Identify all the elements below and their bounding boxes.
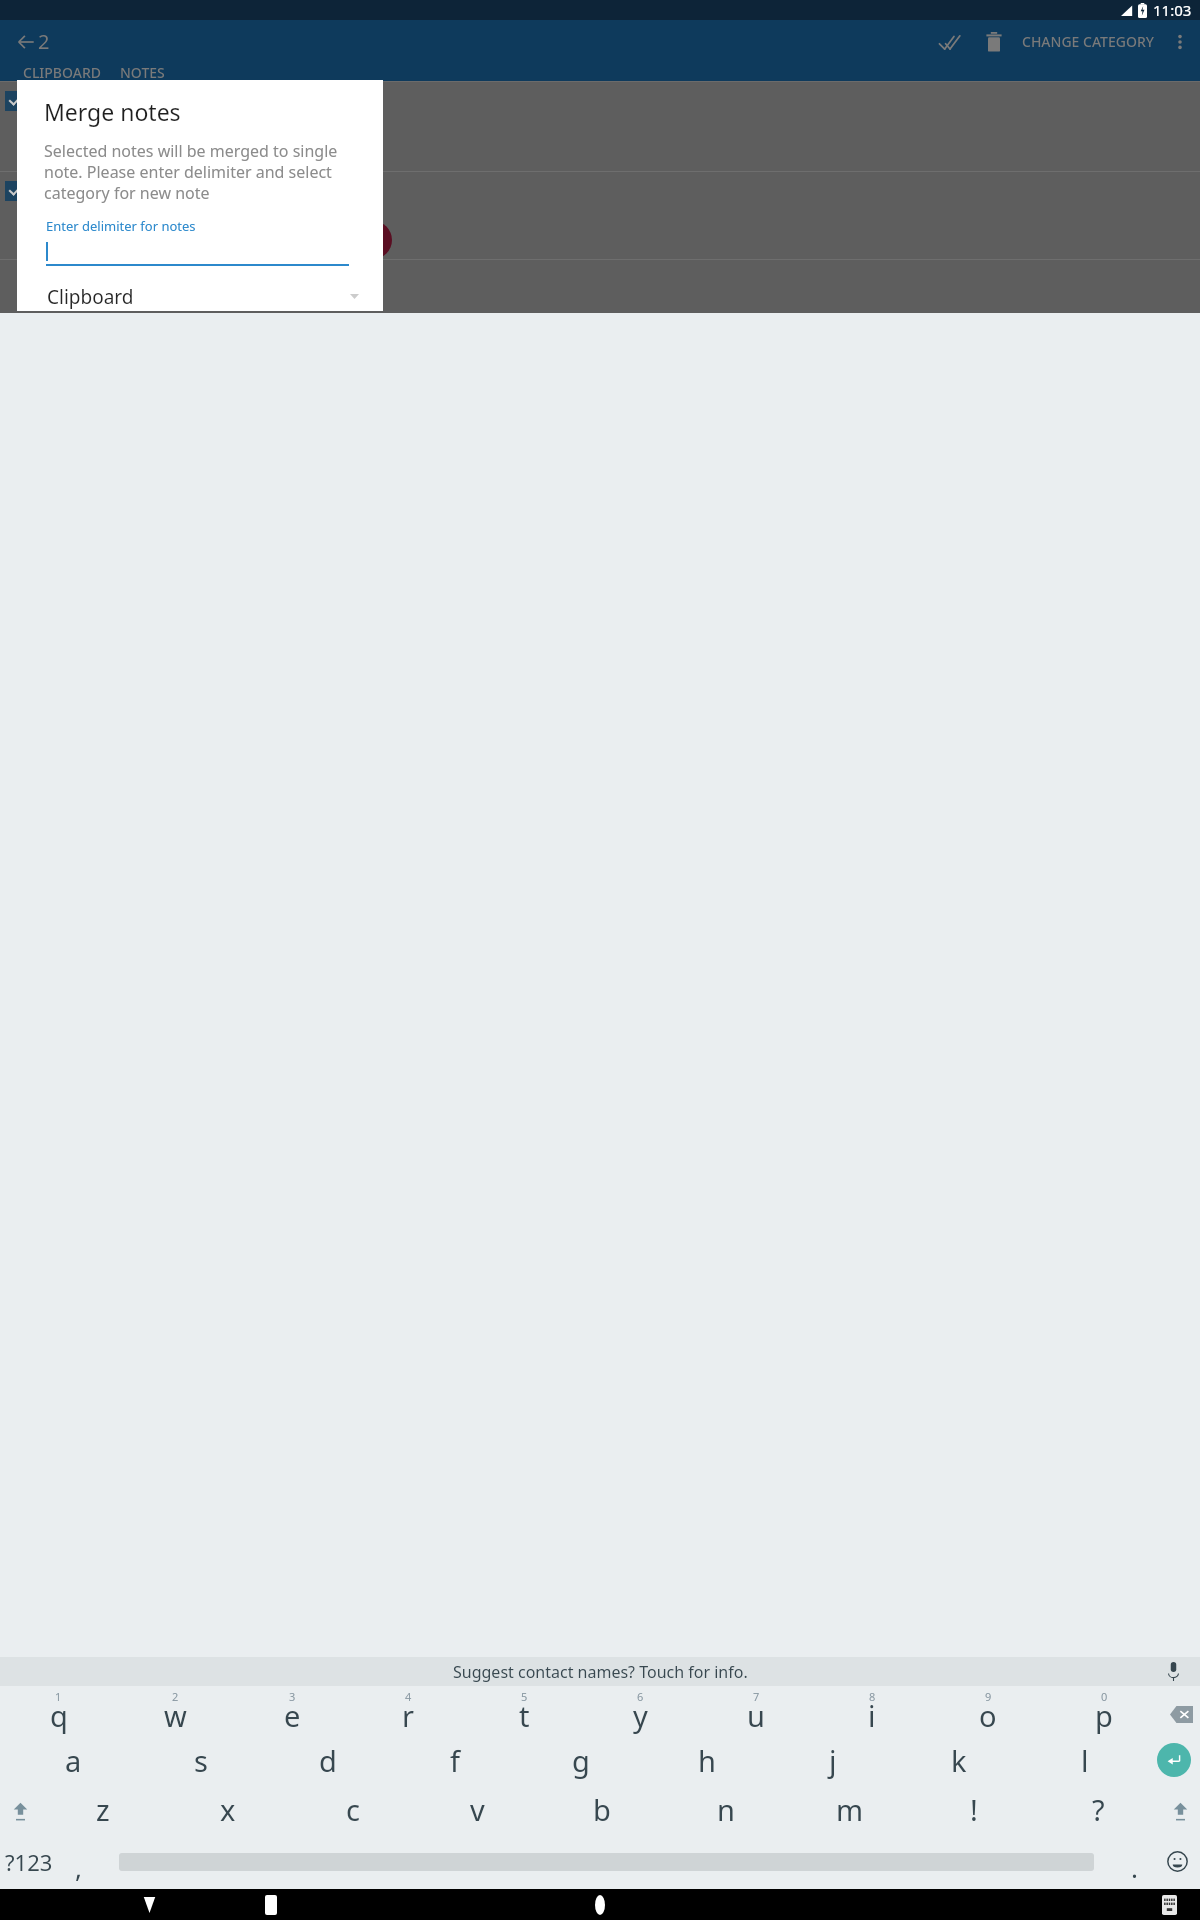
button[interactable]: f bbox=[391, 1736, 518, 1784]
staticText: 8 bbox=[869, 1689, 876, 1704]
button[interactable]: 6 bbox=[582, 1686, 698, 1736]
staticText: g bbox=[572, 1741, 590, 1780]
staticText: c bbox=[346, 1790, 360, 1829]
staticText: q bbox=[50, 1696, 68, 1735]
button[interactable]: j bbox=[770, 1736, 896, 1784]
staticText: w bbox=[164, 1696, 187, 1735]
button[interactable]: l bbox=[1022, 1736, 1148, 1784]
staticText: i bbox=[868, 1696, 876, 1735]
button[interactable]: 1 bbox=[0, 1686, 117, 1736]
button[interactable]: CHANGE CATEGORY bbox=[1016, 20, 1160, 63]
button[interactable]: Shift bbox=[0, 1784, 40, 1834]
staticText: f bbox=[450, 1741, 460, 1780]
staticText: 2 bbox=[38, 28, 50, 55]
staticText: j bbox=[829, 1741, 837, 1780]
button[interactable]: 7 bbox=[698, 1686, 814, 1736]
button[interactable]: g bbox=[518, 1736, 644, 1784]
staticText: z bbox=[96, 1790, 110, 1829]
button[interactable]: Voice input bbox=[1158, 1657, 1188, 1686]
staticText: u bbox=[747, 1696, 765, 1735]
button[interactable]: 0 bbox=[1046, 1686, 1162, 1736]
button[interactable]: 5 bbox=[466, 1686, 582, 1736]
button[interactable]: ?123 bbox=[0, 1834, 58, 1889]
staticText: ! bbox=[970, 1790, 978, 1829]
staticText: a bbox=[65, 1741, 82, 1780]
button[interactable]: 3 bbox=[234, 1686, 350, 1736]
staticText: Clipboard bbox=[47, 284, 134, 310]
button[interactable]: More options bbox=[1160, 22, 1200, 62]
button[interactable]: m bbox=[788, 1784, 912, 1834]
button[interactable]: h bbox=[644, 1736, 770, 1784]
staticText: v bbox=[470, 1790, 485, 1829]
staticText: o bbox=[979, 1696, 997, 1735]
staticText: 9 bbox=[985, 1689, 992, 1704]
staticText: e bbox=[284, 1696, 301, 1735]
button[interactable]: CLIPBOARD bbox=[23, 63, 101, 81]
staticText: n bbox=[717, 1790, 735, 1829]
button[interactable]: c bbox=[290, 1784, 415, 1834]
button[interactable]: Back bbox=[4, 20, 48, 63]
button[interactable]: . bbox=[1114, 1834, 1154, 1889]
button[interactable]: Enter bbox=[1148, 1736, 1200, 1784]
button[interactable]: 9 bbox=[930, 1686, 1046, 1736]
staticText: r bbox=[402, 1696, 414, 1735]
staticText: d bbox=[319, 1741, 337, 1780]
button[interactable]: Switch keyboard bbox=[1152, 1889, 1186, 1920]
button[interactable] bbox=[46, 242, 349, 266]
button[interactable]: b bbox=[540, 1784, 664, 1834]
staticText: Enter delimiter for notes bbox=[46, 217, 196, 235]
staticText: Selected notes will be merged to single … bbox=[44, 140, 364, 204]
staticText: 4 bbox=[405, 1689, 412, 1704]
staticText: 7 bbox=[753, 1689, 760, 1704]
button[interactable]: s bbox=[137, 1736, 264, 1784]
button[interactable]: 2 bbox=[117, 1686, 234, 1736]
staticText: ? bbox=[1092, 1790, 1105, 1829]
button[interactable]: Recent apps bbox=[252, 1889, 290, 1920]
button[interactable]: Backspace bbox=[1162, 1686, 1200, 1736]
button[interactable]: d bbox=[264, 1736, 391, 1784]
button[interactable]: v bbox=[415, 1784, 540, 1834]
staticText: t bbox=[519, 1696, 530, 1735]
button[interactable]: , bbox=[58, 1834, 98, 1889]
button[interactable]: Emoji bbox=[1154, 1834, 1200, 1889]
button[interactable]: x bbox=[165, 1784, 290, 1834]
staticText: 1 bbox=[55, 1689, 62, 1704]
button[interactable]: ? bbox=[1036, 1784, 1160, 1834]
staticText: x bbox=[220, 1790, 236, 1829]
staticText: . bbox=[1131, 1850, 1138, 1885]
staticText: p bbox=[1095, 1696, 1113, 1735]
staticText: Merge notes bbox=[44, 96, 181, 127]
staticText: CHANGE CATEGORY bbox=[1022, 32, 1154, 51]
staticText: h bbox=[698, 1741, 716, 1780]
staticText: y bbox=[633, 1696, 648, 1735]
button[interactable]: Shift bbox=[1160, 1784, 1200, 1834]
button[interactable]: Suggest contact names? Touch for info. bbox=[453, 1661, 748, 1683]
button[interactable]: z bbox=[40, 1784, 165, 1834]
staticText: , bbox=[75, 1850, 82, 1885]
button[interactable]: Clipboard bbox=[47, 282, 359, 311]
staticText: m bbox=[836, 1790, 864, 1829]
button[interactable]: k bbox=[896, 1736, 1022, 1784]
button[interactable]: Delete bbox=[972, 20, 1016, 63]
button[interactable]: 8 bbox=[814, 1686, 930, 1736]
button[interactable]: 4 bbox=[350, 1686, 466, 1736]
staticText: b bbox=[593, 1790, 611, 1829]
staticText: 6 bbox=[637, 1689, 644, 1704]
staticText: 2 bbox=[172, 1689, 179, 1704]
staticText: s bbox=[194, 1741, 208, 1780]
button[interactable]: NOTES bbox=[120, 63, 165, 81]
staticText: ?123 bbox=[5, 1847, 53, 1877]
button[interactable]: Select all bbox=[928, 20, 972, 63]
button[interactable]: Back bbox=[130, 1889, 168, 1920]
button[interactable]: ! bbox=[912, 1784, 1036, 1834]
staticText: l bbox=[1081, 1741, 1089, 1780]
button[interactable]: n bbox=[664, 1784, 788, 1834]
button[interactable]: Add bbox=[354, 221, 392, 259]
staticText: 5 bbox=[521, 1689, 528, 1704]
button[interactable]: a bbox=[10, 1736, 137, 1784]
staticText: 11:03 bbox=[1153, 0, 1192, 20]
button[interactable]: Home bbox=[580, 1889, 620, 1920]
staticText: 0 bbox=[1101, 1689, 1108, 1704]
staticText: 3 bbox=[289, 1689, 296, 1704]
button[interactable]: Space bbox=[98, 1834, 1114, 1889]
